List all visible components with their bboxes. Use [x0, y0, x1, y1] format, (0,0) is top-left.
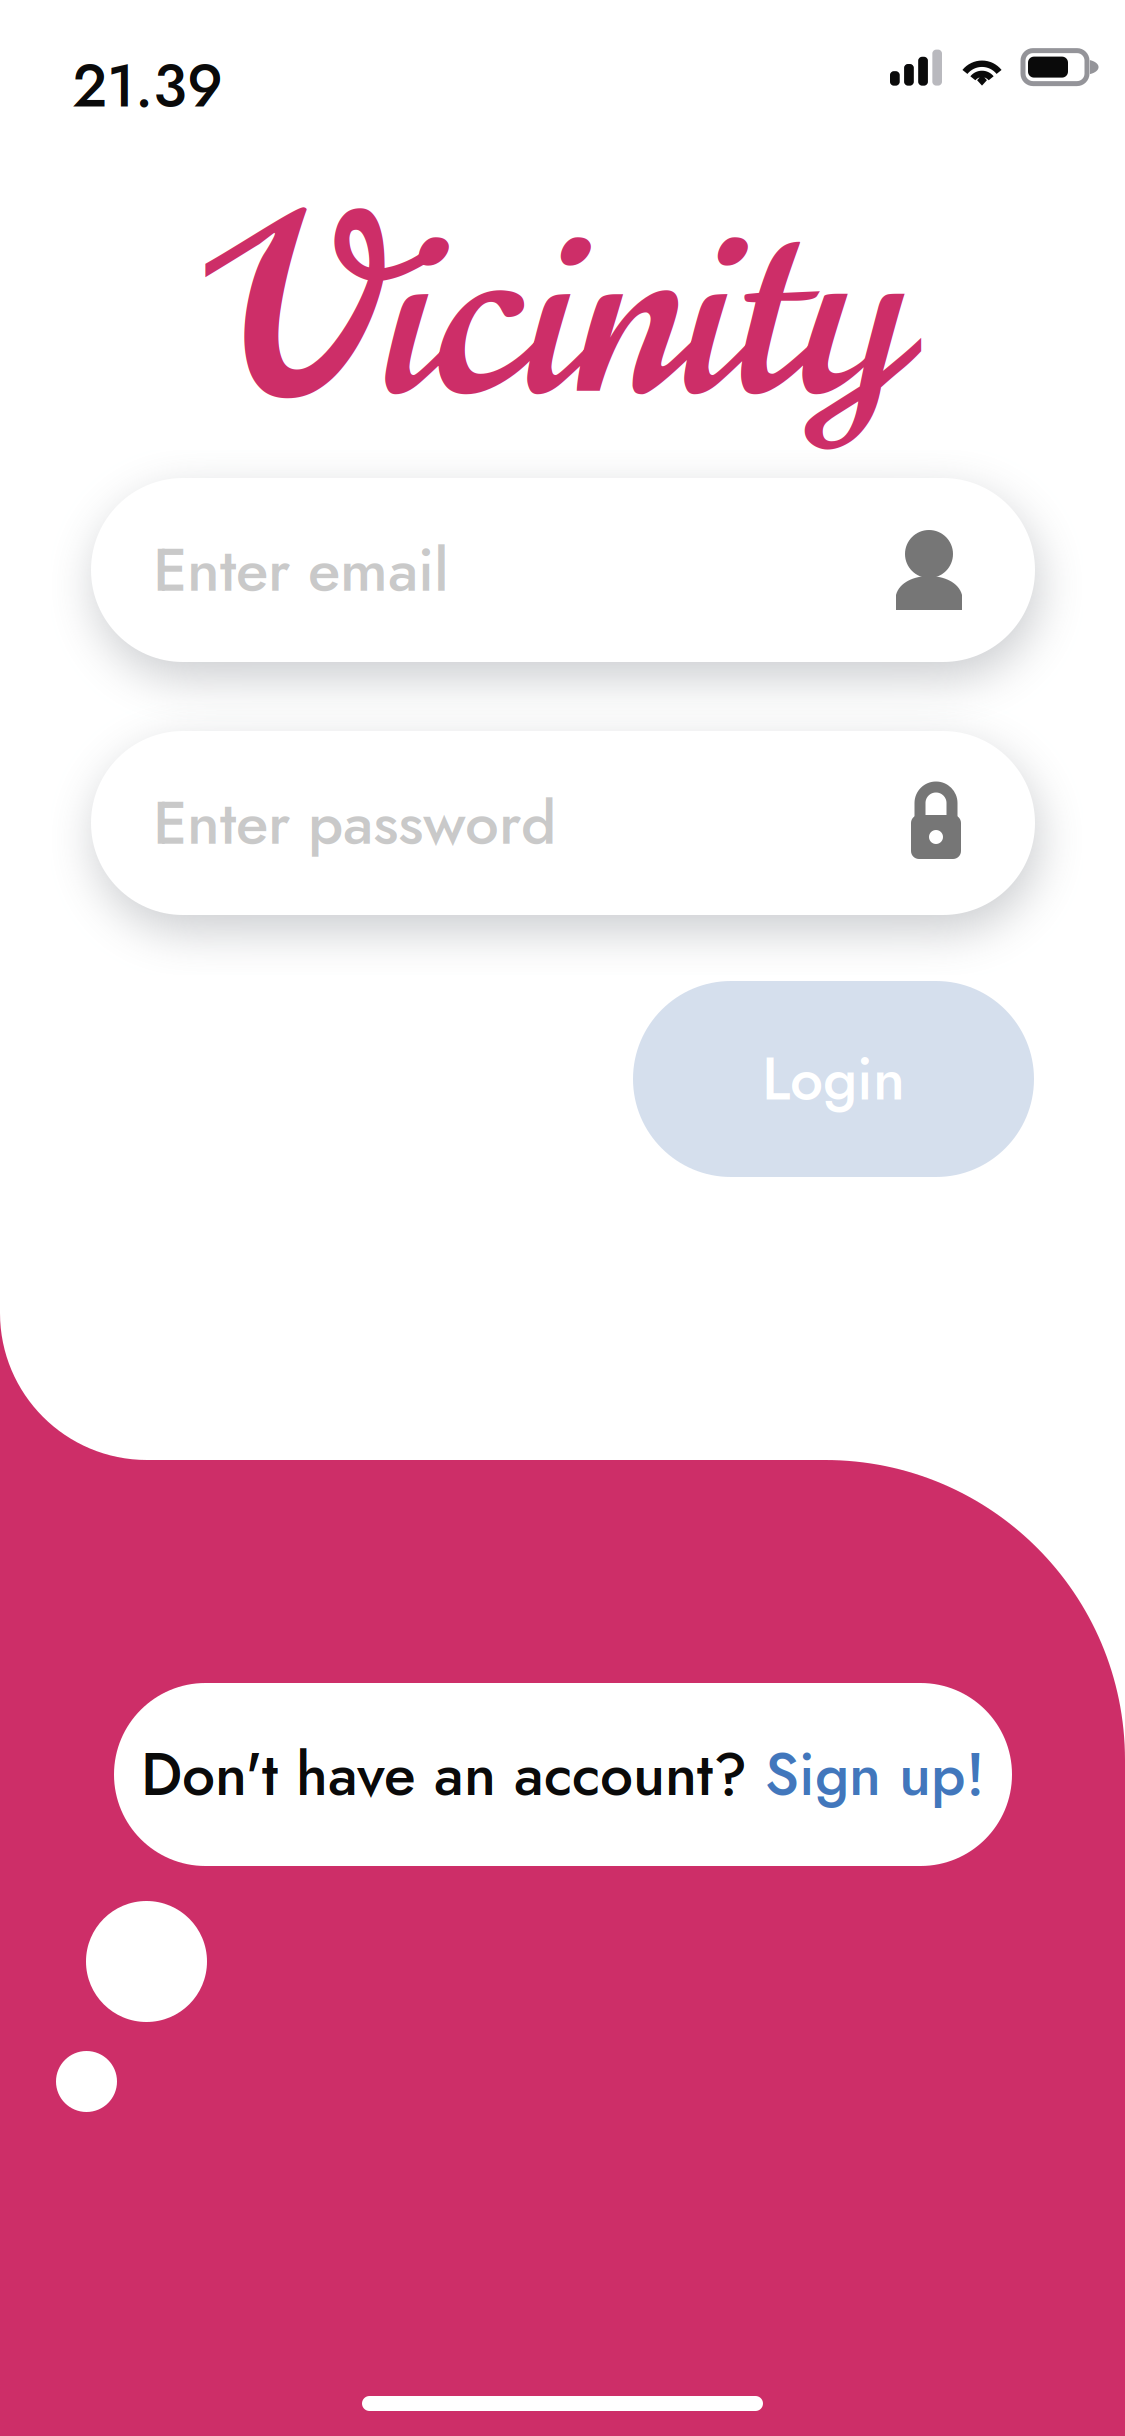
button[interactable]: Login: [633, 981, 1034, 1177]
staticText: Don't have an account?: [141, 1732, 747, 1817]
button[interactable]: Enter email: [91, 478, 1035, 662]
staticText: Enter password: [153, 780, 556, 866]
button[interactable]: Don't have an account?: [114, 1683, 1012, 1866]
staticText: Sign up!: [747, 1732, 985, 1817]
staticText: Enter email: [153, 527, 449, 613]
staticText: Vicinity: [213, 139, 908, 487]
button[interactable]: Enter password: [91, 731, 1035, 915]
staticText: Login: [762, 1037, 905, 1121]
staticText: 21.39: [72, 44, 223, 128]
